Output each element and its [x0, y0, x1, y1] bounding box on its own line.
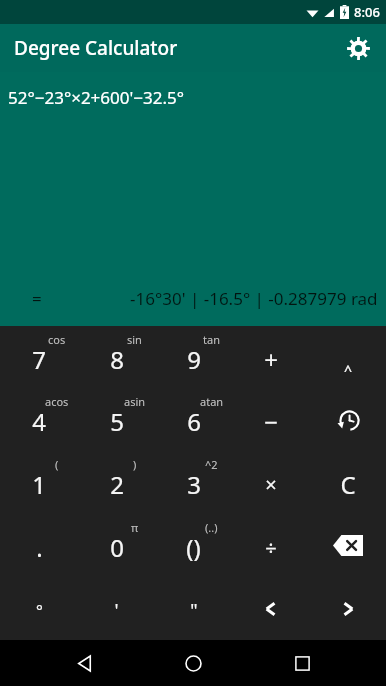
staticText: 5	[110, 405, 124, 438]
button[interactable]: Recent apps	[278, 640, 326, 686]
button[interactable]: (	[0, 451, 78, 514]
staticText: "	[190, 598, 198, 623]
staticText: π	[131, 520, 139, 535]
staticText: .	[36, 531, 43, 564]
button[interactable]: (..)	[155, 514, 232, 577]
staticText: 6	[187, 405, 201, 438]
button[interactable]: Home	[169, 640, 217, 686]
staticText: ×	[265, 471, 277, 498]
staticText: acos	[45, 394, 69, 409]
button[interactable]: '	[78, 577, 155, 640]
staticText: 2	[110, 468, 124, 501]
staticText: 8:06	[354, 3, 380, 21]
staticText: sin	[127, 332, 142, 347]
staticText: (	[55, 457, 59, 472]
staticText: ÷	[265, 534, 277, 561]
button[interactable]: +	[232, 326, 309, 388]
staticText: -16°30' | -16.5° | -0.287979 rad	[130, 287, 378, 310]
button[interactable]: ‸	[309, 326, 386, 388]
staticText: atan	[200, 394, 224, 409]
staticText: °	[36, 600, 43, 622]
staticText: C	[340, 468, 356, 501]
button[interactable]: cos	[0, 326, 78, 388]
button[interactable]: Move cursor right	[309, 577, 386, 640]
button[interactable]: asin	[78, 388, 155, 451]
staticText: (..)	[205, 520, 218, 535]
button[interactable]: tan	[155, 326, 232, 388]
staticText: 7	[32, 343, 46, 376]
button[interactable]: Settings	[338, 28, 378, 68]
staticText: 8	[110, 343, 124, 376]
button[interactable]: π	[78, 514, 155, 577]
staticText: 52°−23°×2+600'−32.5°	[8, 86, 185, 109]
staticText: ‸	[344, 346, 352, 373]
staticText: ()	[186, 531, 201, 564]
staticText: 4	[32, 405, 46, 438]
button[interactable]: Move cursor left	[232, 577, 309, 640]
staticText: '	[114, 598, 119, 623]
staticText: tan	[203, 332, 220, 347]
button[interactable]: .	[0, 514, 78, 577]
button[interactable]: )	[78, 451, 155, 514]
button[interactable]: acos	[0, 388, 78, 451]
button[interactable]: "	[155, 577, 232, 640]
staticText: Degree Calculator	[14, 35, 178, 61]
button[interactable]: ^2	[155, 451, 232, 514]
button[interactable]: sin	[78, 326, 155, 388]
staticText: 3	[187, 468, 201, 501]
staticText: −	[264, 405, 278, 438]
button[interactable]: ÷	[232, 514, 309, 577]
staticText: 0	[110, 531, 124, 564]
staticText: )	[133, 457, 137, 472]
button[interactable]: ×	[232, 451, 309, 514]
button[interactable]: Backspace	[309, 514, 386, 577]
button[interactable]: Back	[61, 640, 109, 686]
staticText: +	[264, 343, 278, 376]
staticText: cos	[48, 332, 66, 347]
button[interactable]: C	[309, 451, 386, 514]
button[interactable]: −	[232, 388, 309, 451]
button[interactable]: °	[0, 577, 78, 640]
staticText: 9	[187, 343, 201, 376]
staticText: ^2	[205, 457, 218, 472]
staticText: =	[32, 287, 42, 310]
button[interactable]: History	[309, 388, 386, 451]
button[interactable]: atan	[155, 388, 232, 451]
staticText: asin	[124, 394, 146, 409]
staticText: 1	[32, 468, 46, 501]
